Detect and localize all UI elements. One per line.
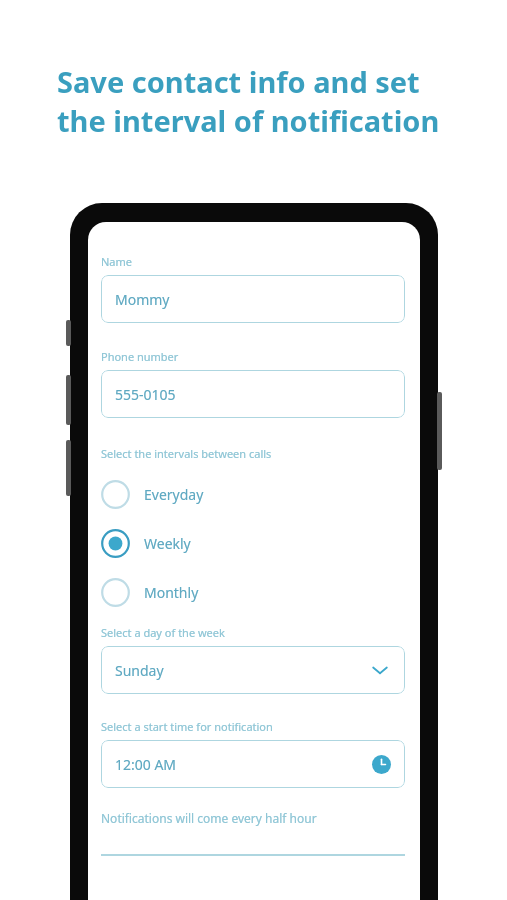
button[interactable]: Sunday <box>101 646 405 694</box>
staticText: Name <box>101 254 133 269</box>
staticText: Notifications will come every half hour <box>101 810 317 826</box>
staticText: Save contact info and set <box>57 62 420 101</box>
staticText: Monthly <box>144 583 199 602</box>
staticText: Phone number <box>101 349 179 364</box>
button[interactable]: Pick time <box>371 754 391 774</box>
staticText: 12:00 AM <box>115 755 371 774</box>
button[interactable]: 12:00 AM <box>101 740 405 788</box>
staticText: Sunday <box>115 661 369 680</box>
staticText: Everyday <box>144 485 204 504</box>
button[interactable]: 555-0105 <box>101 370 405 418</box>
staticText: Select a start time for notification <box>101 719 273 734</box>
staticText: Select a day of the week <box>101 625 225 640</box>
button[interactable]: Open dropdown <box>369 659 391 681</box>
staticText: Select the intervals between calls <box>101 446 272 461</box>
button[interactable]: Everyday <box>101 470 405 519</box>
button[interactable]: Monthly <box>101 568 405 617</box>
button[interactable]: Mommy <box>101 275 405 323</box>
button[interactable]: Weekly <box>101 519 405 568</box>
staticText: 555-0105 <box>115 385 391 404</box>
staticText: Weekly <box>144 534 191 553</box>
staticText: the interval of notification <box>57 101 440 140</box>
staticText: Mommy <box>115 290 391 309</box>
